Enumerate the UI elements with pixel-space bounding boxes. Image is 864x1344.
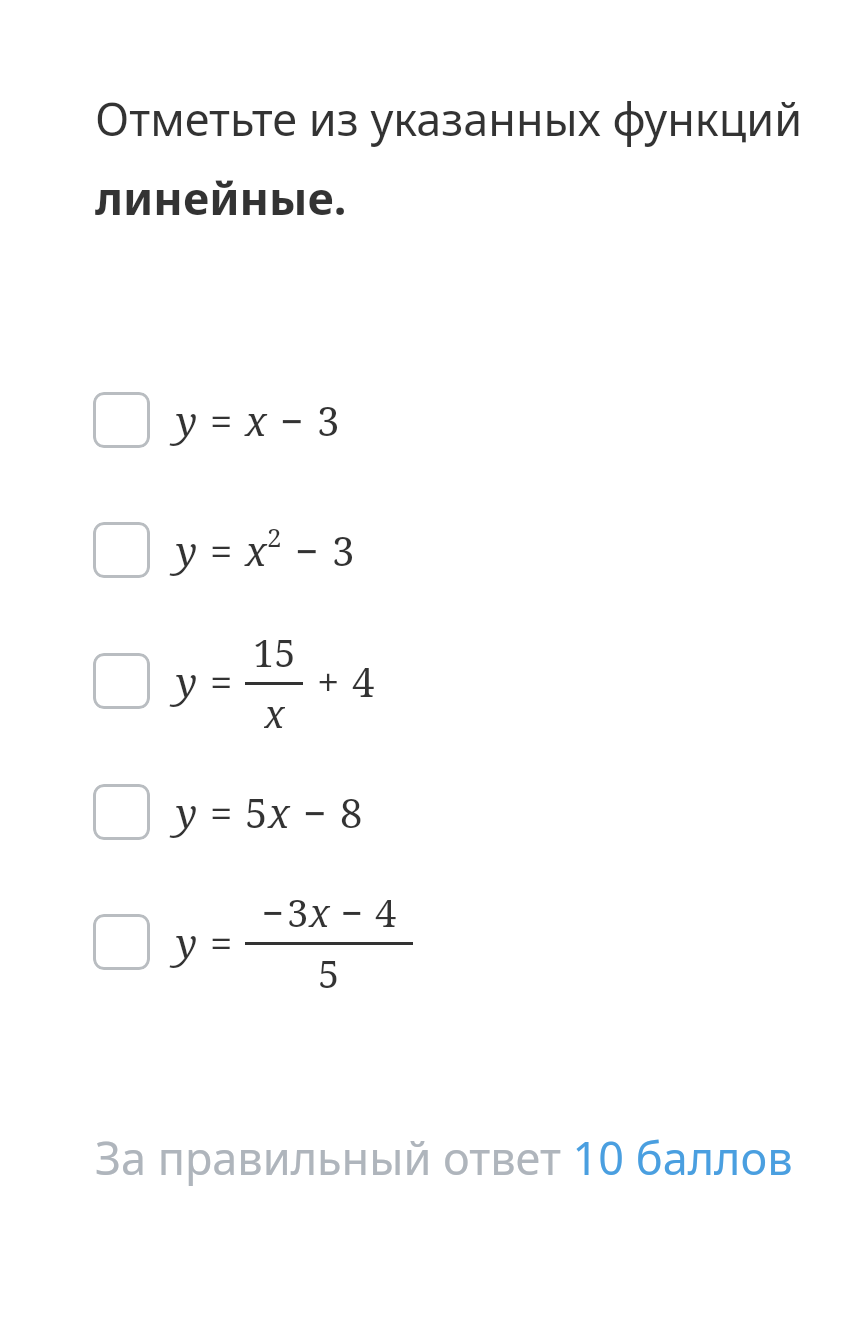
button[interactable]: Checkbox <box>93 784 150 840</box>
staticText: 4 <box>352 654 375 708</box>
staticText: 15 <box>253 626 296 678</box>
staticText: 3 <box>332 523 355 577</box>
staticText: = <box>210 523 233 577</box>
button[interactable]: Checkbox <box>93 914 150 970</box>
staticText: y <box>176 523 198 577</box>
staticText: = <box>210 393 233 447</box>
staticText: x <box>264 687 285 736</box>
staticText: x <box>245 393 267 447</box>
staticText: 5 <box>318 947 340 998</box>
staticText: = <box>210 915 233 969</box>
staticText: 8 <box>340 785 363 839</box>
button[interactable]: Checkbox <box>0 384 864 456</box>
staticText: Отметьте из указанных функций линейные. <box>95 88 824 228</box>
button[interactable]: Checkbox <box>93 392 150 448</box>
button[interactable]: Checkbox <box>0 886 864 998</box>
staticText: − <box>341 886 364 938</box>
staticText: = <box>210 785 233 839</box>
staticText: − <box>295 523 319 577</box>
staticText: y <box>176 915 198 969</box>
staticText: y <box>176 785 198 839</box>
staticText: 4 <box>375 886 397 938</box>
button[interactable]: Checkbox <box>0 514 864 586</box>
staticText: За правильный ответ 10 баллов <box>95 1127 793 1188</box>
staticText: 3 <box>287 886 309 938</box>
button[interactable]: Checkbox <box>0 626 864 736</box>
staticText: x <box>268 785 290 839</box>
staticText: = <box>210 654 233 708</box>
staticText: 2 <box>267 519 282 554</box>
staticText: y <box>176 393 198 447</box>
button[interactable]: Checkbox <box>93 522 150 578</box>
staticText: − <box>280 393 304 447</box>
button[interactable]: Checkbox <box>93 653 150 709</box>
staticText: − <box>303 785 327 839</box>
staticText: x <box>309 886 330 938</box>
staticText: 3 <box>317 393 340 447</box>
staticText: x <box>245 523 267 577</box>
button[interactable]: Checkbox <box>0 776 864 848</box>
staticText: 5 <box>245 785 268 839</box>
staticText: y <box>176 654 198 708</box>
staticText: − <box>262 886 285 938</box>
staticText: + <box>317 654 340 708</box>
